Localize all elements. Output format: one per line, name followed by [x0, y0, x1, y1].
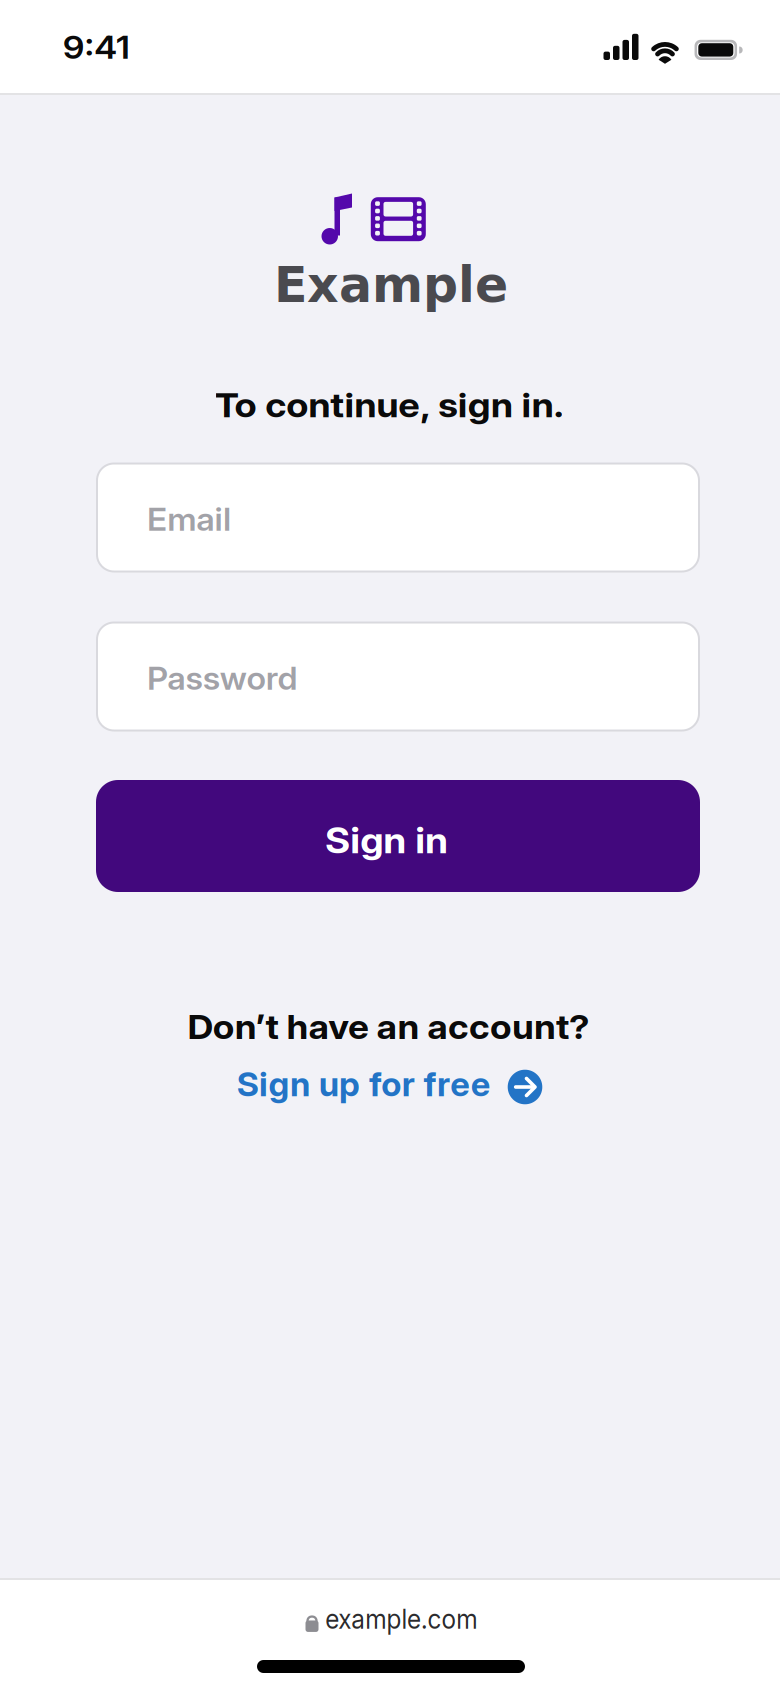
staticText: Sign up for free [237, 1063, 491, 1104]
staticText: To continue, sign in. [230, 384, 547, 425]
staticText: Example [274, 256, 508, 313]
staticText: example.com [319, 1603, 483, 1635]
staticText: 9:41 [65, 28, 127, 66]
button[interactable]: Email [96, 462, 700, 572]
staticText: Email [147, 501, 226, 538]
button[interactable]: Sign up for free [234, 1065, 542, 1109]
staticText: Password [147, 660, 288, 697]
button[interactable]: Sign in [96, 780, 700, 892]
staticText: Sign in [331, 819, 443, 862]
button[interactable]: example.com [299, 1606, 483, 1638]
button[interactable]: Password [96, 621, 700, 731]
staticText: Don’t have an account? [206, 1007, 572, 1047]
